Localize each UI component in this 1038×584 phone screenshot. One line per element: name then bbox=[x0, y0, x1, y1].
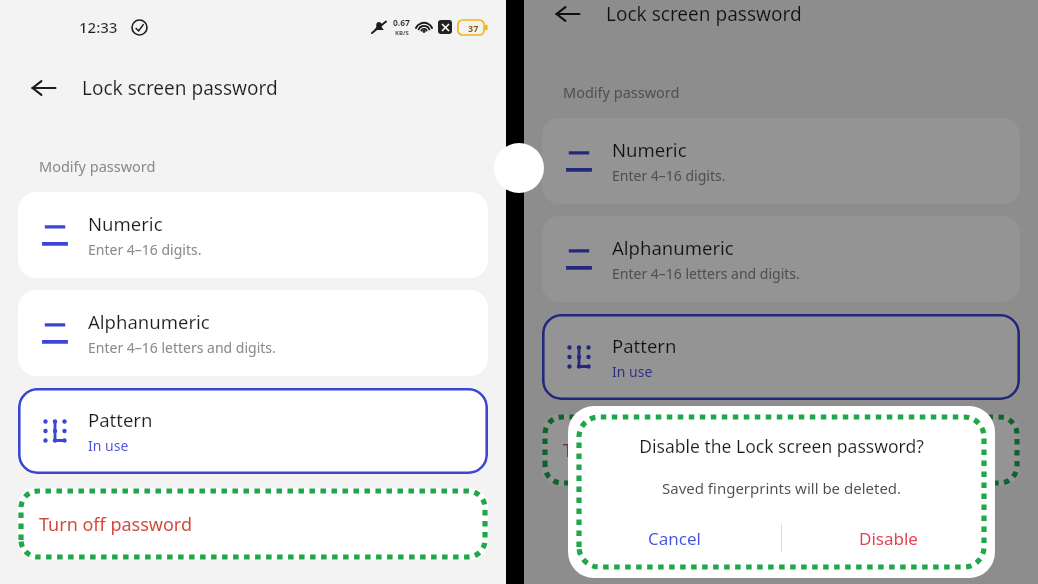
staticText: Enter 4–16 letters and digits. bbox=[88, 338, 276, 357]
staticText: Disable bbox=[859, 527, 918, 550]
staticText: 37 bbox=[468, 22, 479, 34]
button[interactable]: Numeric bbox=[18, 192, 488, 278]
staticText: Alphanumeric bbox=[612, 235, 734, 260]
staticText: Modify password bbox=[563, 82, 680, 102]
button[interactable]: Alphanumeric bbox=[542, 216, 1020, 302]
staticText: Modify password bbox=[39, 156, 156, 176]
staticText: 0.67 bbox=[393, 17, 410, 29]
staticText: Enter 4–16 digits. bbox=[88, 240, 202, 259]
staticText: Lock screen password bbox=[606, 1, 802, 27]
staticText: Alphanumeric bbox=[88, 309, 210, 334]
button[interactable]: Back bbox=[546, 0, 590, 36]
staticText: Pattern bbox=[612, 333, 677, 358]
staticText: Turn off password bbox=[39, 512, 193, 537]
button[interactable]: Turn off password bbox=[542, 414, 1020, 486]
staticText: In use bbox=[88, 436, 129, 455]
button[interactable]: Numeric bbox=[542, 118, 1020, 204]
button[interactable]: Pattern bbox=[542, 314, 1020, 400]
staticText: KB/S bbox=[395, 29, 409, 37]
button[interactable]: Disable bbox=[782, 516, 995, 560]
staticText: Cancel bbox=[648, 527, 701, 550]
staticText: Enter 4–16 digits. bbox=[612, 166, 726, 185]
staticText: Disable the Lock screen password? bbox=[639, 434, 924, 458]
staticText: Lock screen password bbox=[82, 75, 278, 101]
staticText: Enter 4–16 letters and digits. bbox=[612, 264, 800, 283]
staticText: Saved fingerprints will be deleted. bbox=[662, 478, 902, 498]
staticText: Pattern bbox=[88, 407, 153, 432]
button[interactable]: Cancel bbox=[568, 516, 781, 560]
staticText: Numeric bbox=[88, 211, 163, 236]
button[interactable]: Pattern bbox=[18, 388, 488, 474]
staticText: 12:33 bbox=[79, 17, 118, 37]
staticText: Turn off password bbox=[563, 438, 717, 463]
staticText: In use bbox=[612, 362, 653, 381]
button[interactable]: Alphanumeric bbox=[18, 290, 488, 376]
staticText: Numeric bbox=[612, 137, 687, 162]
button[interactable]: Turn off password bbox=[18, 488, 488, 560]
button[interactable]: Back bbox=[22, 66, 66, 110]
